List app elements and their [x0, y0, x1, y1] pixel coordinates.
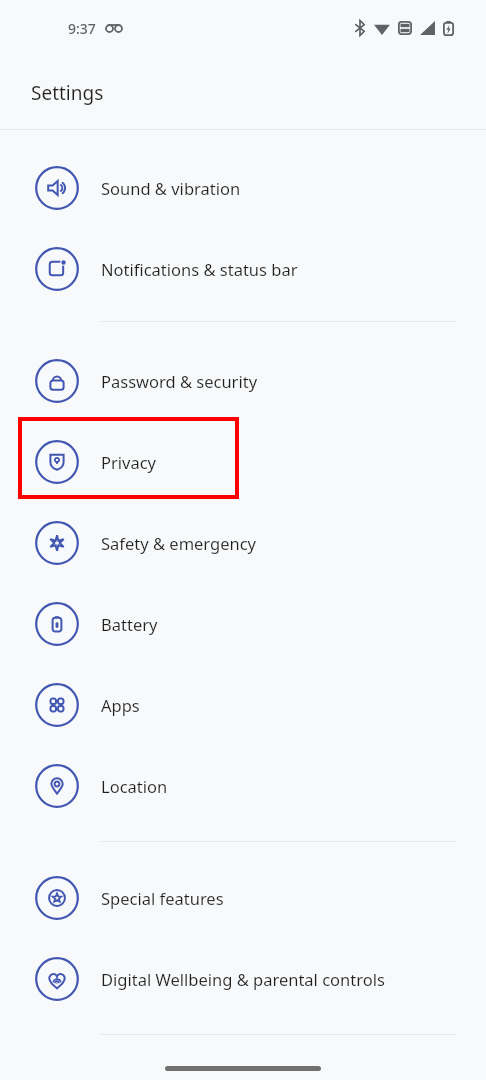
button[interactable]: Special features [0, 857, 486, 938]
button[interactable]: Location [0, 745, 486, 826]
button[interactable]: Password & security [0, 340, 486, 421]
button[interactable]: Safety & emergency [0, 502, 486, 583]
button[interactable]: Privacy [0, 421, 486, 502]
staticText: Sound & vibration [101, 177, 241, 199]
button[interactable]: Sound & vibration [0, 147, 486, 228]
staticText: Special features [101, 887, 224, 909]
staticText: Privacy [101, 451, 157, 473]
staticText: Notifications & status bar [101, 258, 298, 280]
button[interactable]: Digital Wellbeing & parental controls [0, 938, 486, 1019]
staticText: 9:37 [68, 19, 96, 38]
staticText: Password & security [101, 370, 258, 392]
button[interactable]: Notifications & status bar [0, 228, 486, 309]
button[interactable]: Apps [0, 664, 486, 745]
staticText: Settings [31, 80, 104, 106]
button[interactable]: Battery [0, 583, 486, 664]
staticText: Digital Wellbeing & parental controls [101, 968, 385, 990]
staticText: Battery [101, 613, 158, 635]
staticText: Safety & emergency [101, 532, 257, 554]
staticText: Location [101, 775, 168, 797]
staticText: Apps [101, 694, 140, 716]
